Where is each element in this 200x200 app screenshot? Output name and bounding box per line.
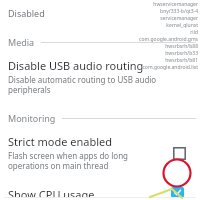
staticText: kernel_qlunst — [166, 22, 198, 29]
staticText: hwsrbsrh/b88 — [165, 43, 198, 50]
staticText: Show CPU usage — [8, 187, 95, 198]
button[interactable]: Strict mode enabled checkbox — [168, 142, 190, 164]
button[interactable]: Show CPU usage — [0, 185, 200, 200]
staticText: hwsrbsrh/b81 — [165, 57, 198, 64]
staticText: rild — [190, 29, 198, 36]
staticText: hwsrbsrh/b33 — [165, 50, 198, 57]
button[interactable]: Disable USB audio routing — [0, 55, 200, 99]
staticText: Disable USB audio routing — [8, 58, 144, 73]
button[interactable]: Strict mode enabled — [0, 132, 200, 175]
staticText: Media — [8, 36, 35, 48]
staticText: servicemanager — [160, 15, 198, 22]
staticText: Disable automatic routing to USB audio p… — [8, 74, 157, 95]
staticText: Strict mode enabled — [8, 134, 113, 149]
staticText: Flash screen when apps do long operation… — [8, 150, 129, 171]
staticText: hwservicemanager — [153, 1, 198, 8]
staticText: Disabled — [8, 7, 45, 19]
staticText: bny/333-b/qt3-4 — [160, 8, 198, 15]
staticText: com.google.android.list — [142, 64, 198, 71]
staticText: Monitoring — [8, 112, 56, 124]
staticText: com.google.android.gms — [139, 36, 198, 43]
button[interactable]: Show CPU usage checkbox — [164, 187, 190, 198]
